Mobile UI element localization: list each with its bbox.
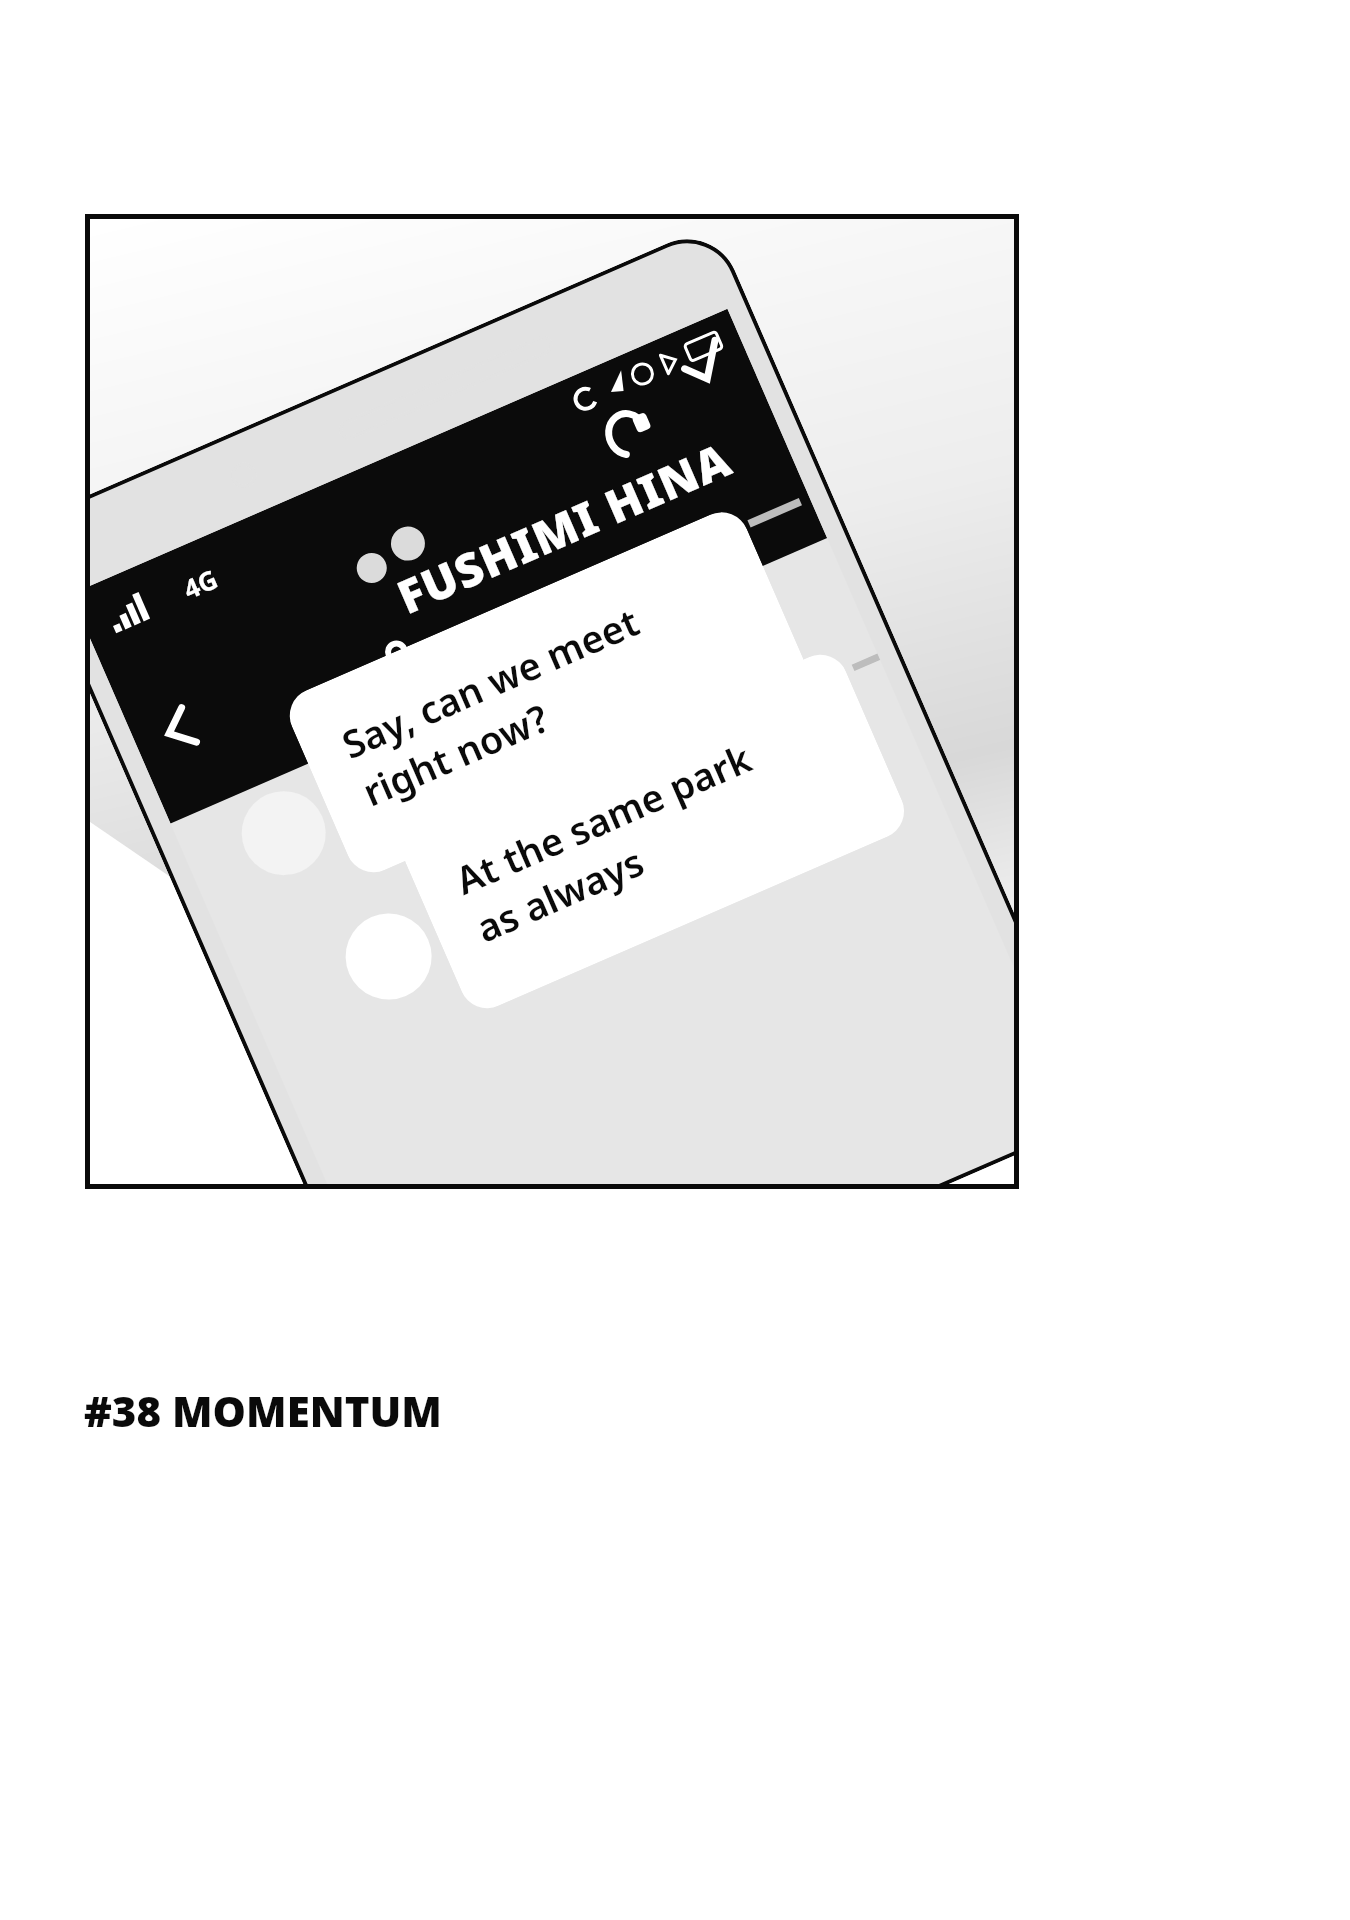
staticText: FUSHIMI HINA [387,427,741,628]
button[interactable]: Say, can we meet right now? [281,503,814,881]
staticText: Say, can we meet right now? [334,595,668,817]
button[interactable]: Back [129,677,232,780]
button[interactable]: At the same park as always [395,646,913,1017]
staticText: At the same park as always [447,731,780,953]
button[interactable]: Call [582,387,677,482]
button[interactable]: FUSHIMI HINA [387,427,741,628]
button[interactable]: Video call [658,322,750,414]
staticText: 4G [178,560,223,606]
staticText: #38 MOMENTUM [84,1382,442,1439]
